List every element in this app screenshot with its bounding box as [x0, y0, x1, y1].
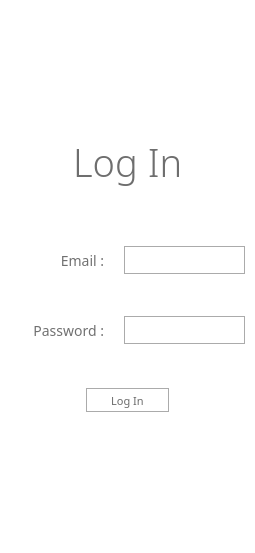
staticText: Password : [33, 321, 104, 340]
button[interactable]: Email input field [124, 246, 245, 274]
button[interactable]: Log In [86, 388, 169, 412]
staticText: Log In [73, 136, 183, 188]
staticText: Email : [60, 251, 104, 270]
staticText: Log In [111, 393, 144, 408]
button[interactable]: Password input field [124, 316, 245, 344]
